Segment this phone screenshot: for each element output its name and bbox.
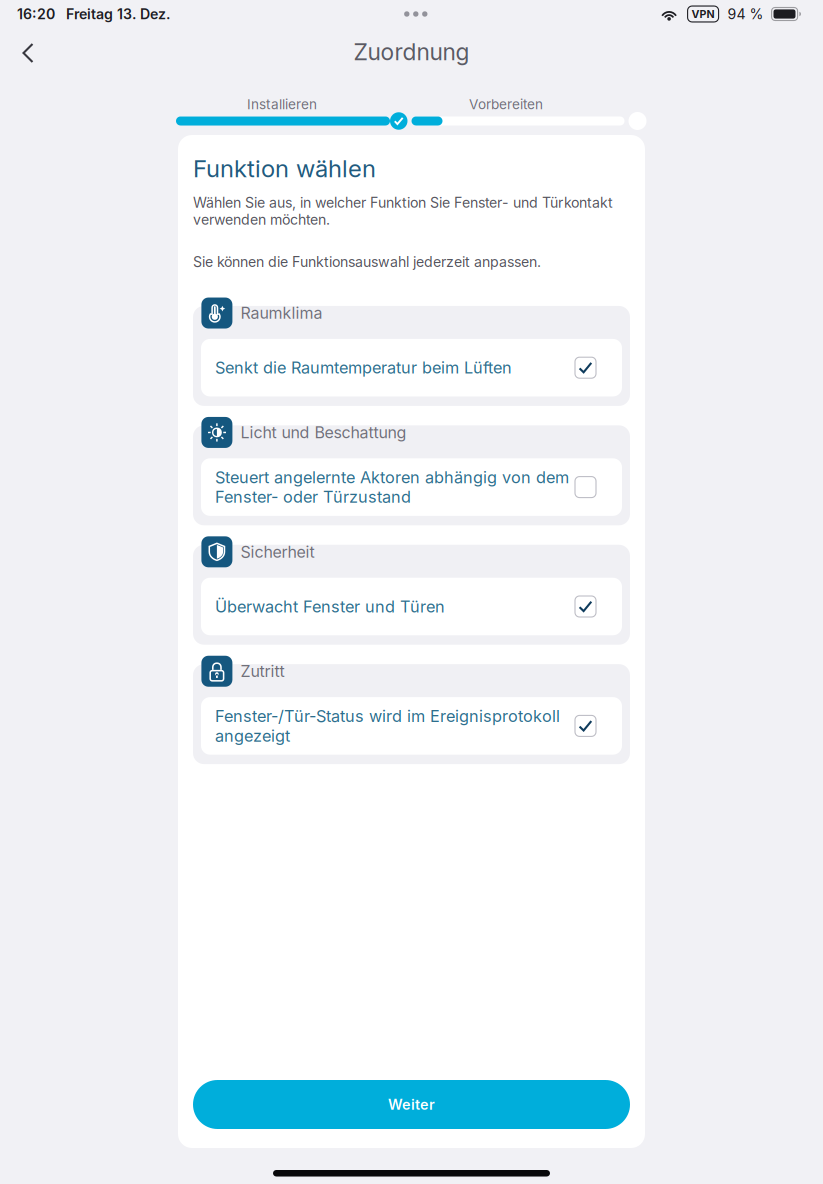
staticText: Senkt die Raumtemperatur beim Lüften	[215, 358, 512, 378]
staticText: Installieren	[247, 96, 317, 112]
staticText: 94 %	[728, 5, 764, 22]
staticText: Funktion wählen	[193, 154, 376, 183]
staticText: Licht und Beschattung	[240, 423, 406, 442]
staticText: Vorbereiten	[469, 96, 543, 112]
staticText: 16:20	[17, 5, 55, 22]
staticText: Sie können die Funktionsauswahl jederzei…	[193, 253, 541, 270]
staticText: Zuordnung	[353, 38, 469, 66]
button[interactable]: Weiter	[193, 1080, 630, 1129]
staticText: Steuert angelernte Aktoren abhängig von …	[215, 467, 569, 507]
button[interactable]: Steuert angelernte Aktoren abhängig von …	[201, 458, 622, 516]
button[interactable]: Überwacht Fenster und Türen	[201, 578, 622, 635]
staticText: Freitag 13. Dez.	[66, 5, 171, 22]
staticText: Fenster-/Tür-Status wird im Ereignisprot…	[215, 706, 560, 746]
staticText: Wählen Sie aus, in welcher Funktion Sie …	[193, 194, 613, 228]
button[interactable]: Fenster-/Tür-Status wird im Ereignisprot…	[201, 697, 622, 755]
staticText: Weiter	[388, 1096, 435, 1113]
staticText: Sicherheit	[240, 542, 314, 562]
button[interactable]: Zurück	[0, 29, 52, 76]
staticText: VPN	[692, 7, 715, 20]
staticText: Zutritt	[240, 662, 284, 681]
button[interactable]: Senkt die Raumtemperatur beim Lüften	[201, 339, 622, 396]
staticText: Raumklima	[240, 303, 322, 323]
staticText: Überwacht Fenster und Türen	[215, 597, 445, 616]
